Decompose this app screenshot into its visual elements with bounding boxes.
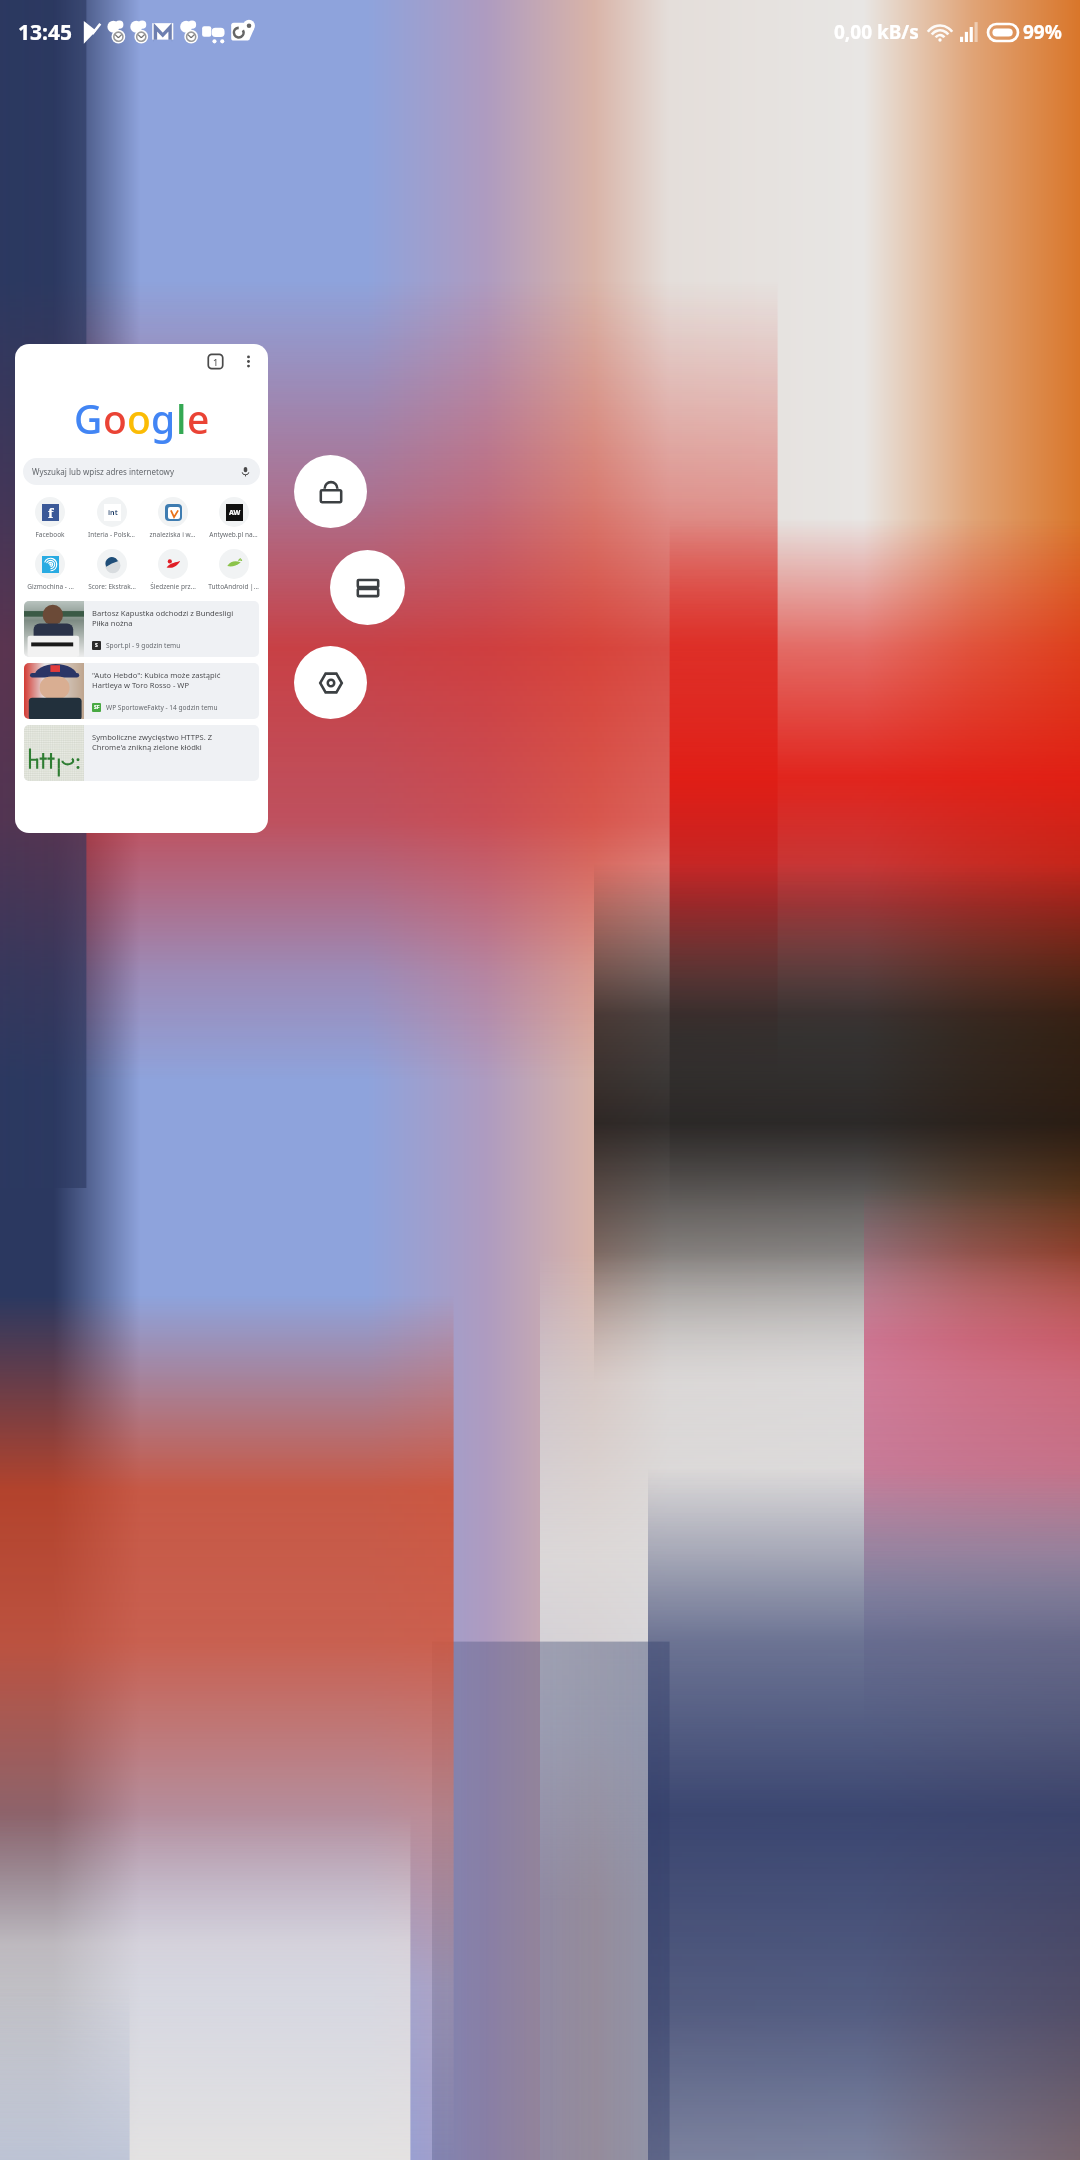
- staticText: g: [151, 392, 176, 445]
- button[interactable]: Bartosz Kapustka odchodzi z Bundesligi P…: [24, 601, 259, 657]
- button[interactable]: More options: [239, 352, 258, 371]
- button[interactable]: Wyszukaj lub wpisz adres internetowy: [23, 458, 260, 485]
- staticText: znaleziska i w…: [149, 530, 196, 539]
- staticText: 13:45: [18, 18, 72, 47]
- staticText: 1: [213, 356, 219, 368]
- staticText: "Auto Hebdo": Kubica może zastąpić Hartl…: [92, 670, 221, 690]
- staticText: S: [95, 642, 98, 649]
- button[interactable]: int: [81, 495, 142, 541]
- staticText: 99%: [1023, 19, 1062, 45]
- staticText: G: [74, 392, 103, 445]
- button[interactable]: AW: [203, 495, 264, 541]
- button[interactable]: App info: [294, 646, 367, 719]
- staticText: o: [103, 392, 127, 445]
- staticText: WP SportoweFakty - 14 godzin temu: [106, 703, 218, 712]
- staticText: AW: [229, 508, 241, 518]
- button[interactable]: TuttoAndroid |…: [203, 547, 264, 593]
- staticText: int: [108, 508, 118, 518]
- staticText: TuttoAndroid |…: [208, 582, 259, 591]
- button[interactable]: Symboliczne zwycięstwo HTTPS. Z Chrome'a…: [24, 725, 259, 781]
- staticText: Wyszukaj lub wpisz adres internetowy: [32, 466, 174, 477]
- staticText: Bartosz Kapustka odchodzi z Bundesligi P…: [92, 608, 234, 628]
- staticText: Symboliczne zwycięstwo HTTPS. Z Chrome'a…: [92, 732, 213, 752]
- staticText: Sport.pl - 9 godzin temu: [106, 641, 181, 650]
- button[interactable]: "Auto Hebdo": Kubica może zastąpić Hartl…: [24, 663, 259, 719]
- staticText: o: [127, 392, 151, 445]
- staticText: Score: Ekstrak…: [88, 582, 136, 591]
- button[interactable]: Śledzenie prz…: [142, 547, 203, 593]
- staticText: Gizmochina - …: [27, 582, 74, 591]
- staticText: Śledzenie prz…: [150, 582, 196, 591]
- staticText: e: [187, 392, 210, 445]
- button[interactable]: Lock app: [294, 455, 367, 528]
- button[interactable]: f: [19, 495, 81, 541]
- staticText: Interia - Polsk…: [88, 530, 135, 539]
- staticText: l: [176, 392, 187, 445]
- staticText: Facebook: [35, 530, 65, 539]
- button[interactable]: znaleziska i w…: [142, 495, 203, 541]
- button[interactable]: Split screen: [330, 550, 405, 625]
- button[interactable]: Tabs: [206, 352, 225, 371]
- staticText: Antyweb.pl na…: [209, 530, 258, 539]
- staticText: SF: [94, 704, 100, 711]
- button[interactable]: Score: Ekstrak…: [81, 547, 142, 593]
- staticText: 0,00 kB/s: [834, 19, 919, 45]
- button[interactable]: Tabs: [15, 344, 268, 833]
- button[interactable]: Gizmochina - …: [19, 547, 81, 593]
- staticText: f: [48, 504, 54, 521]
